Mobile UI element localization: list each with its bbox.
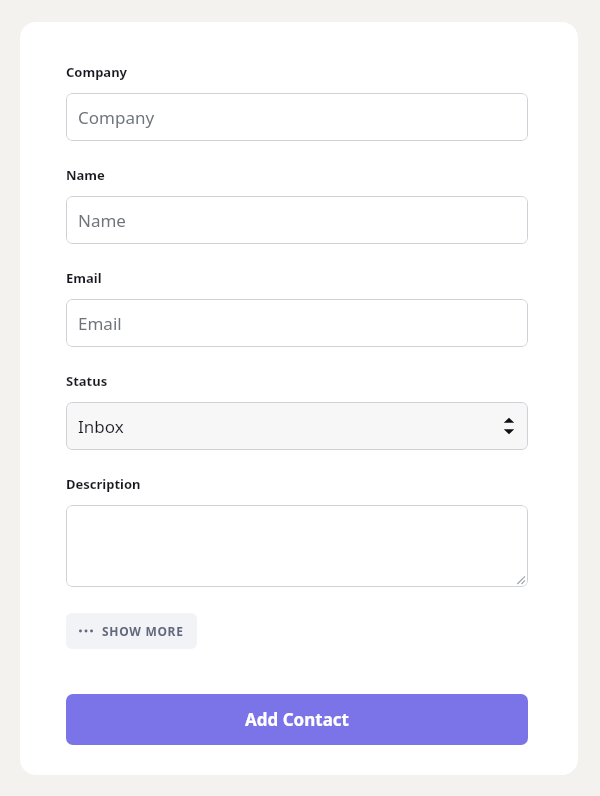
staticText: Company: [78, 106, 155, 129]
button[interactable]: Name: [66, 196, 528, 244]
staticText: Name: [66, 166, 105, 184]
button[interactable]: Add Contact: [66, 694, 528, 745]
staticText: Description: [66, 475, 141, 493]
staticText: Company: [66, 63, 128, 81]
staticText: Email: [66, 269, 102, 287]
staticText: Email: [78, 312, 122, 335]
button[interactable]: Company: [66, 93, 528, 141]
staticText: Add Contact: [245, 708, 349, 731]
button[interactable]: SHOW MORE: [66, 613, 197, 649]
button[interactable]: [66, 505, 528, 587]
staticText: Name: [78, 209, 126, 232]
staticText: Inbox: [78, 415, 124, 438]
button[interactable]: Email: [66, 299, 528, 347]
button[interactable]: Inbox: [66, 402, 528, 450]
staticText: SHOW MORE: [102, 623, 184, 639]
staticText: Status: [66, 372, 108, 390]
